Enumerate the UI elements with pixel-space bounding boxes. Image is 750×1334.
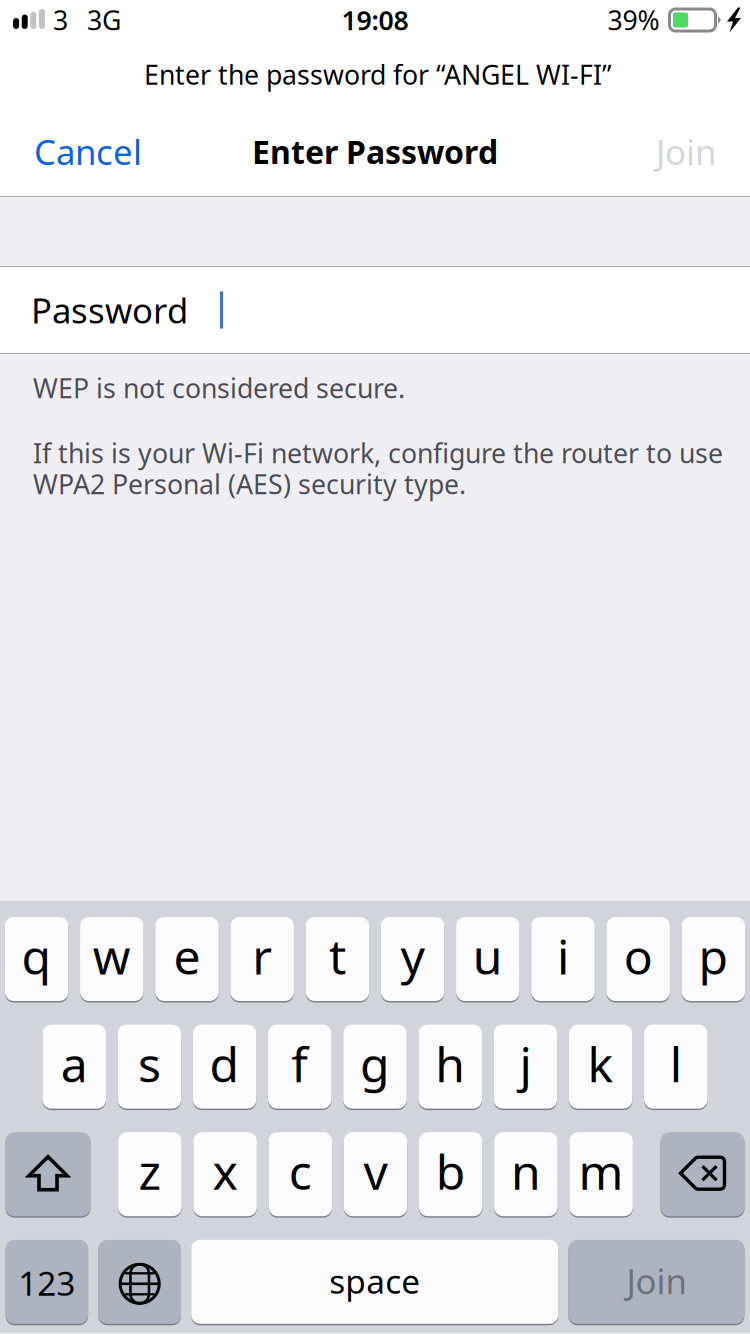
staticText: i — [557, 924, 569, 988]
staticText: e — [173, 924, 200, 988]
button[interactable]: a — [42, 1024, 106, 1110]
staticText: Join — [656, 128, 716, 174]
button[interactable]: o — [606, 916, 670, 1002]
staticText: v — [363, 1139, 387, 1203]
button[interactable]: 123 — [6, 1239, 88, 1325]
button[interactable]: w — [80, 916, 144, 1002]
staticText: b — [436, 1139, 466, 1203]
staticText: a — [61, 1032, 88, 1095]
staticText: r — [252, 924, 272, 988]
staticText: j — [519, 1032, 531, 1095]
button[interactable]: c — [268, 1131, 332, 1217]
button[interactable]: g — [343, 1024, 407, 1110]
button[interactable]: f — [268, 1024, 332, 1110]
staticText: d — [210, 1032, 240, 1095]
button[interactable]: s — [118, 1024, 181, 1110]
button[interactable]: h — [418, 1024, 482, 1110]
staticText: WEP is not considered secure. — [33, 370, 405, 406]
button[interactable]: Next keyboard — [98, 1239, 181, 1325]
staticText: 123 — [18, 1261, 75, 1305]
button[interactable]: Join — [638, 101, 734, 196]
button[interactable]: p — [682, 916, 745, 1002]
button[interactable]: v — [344, 1131, 407, 1217]
button[interactable]: q — [5, 916, 68, 1002]
staticText: t — [329, 924, 346, 988]
button[interactable]: Cancel — [16, 101, 160, 196]
button[interactable]: r — [230, 916, 294, 1002]
button[interactable]: d — [193, 1024, 256, 1110]
button[interactable]: space — [191, 1239, 558, 1325]
staticText: 39% — [607, 2, 659, 38]
staticText: q — [22, 924, 52, 988]
button[interactable]: n — [494, 1131, 558, 1217]
staticText: Cancel — [34, 128, 142, 174]
button[interactable]: Delete — [660, 1131, 744, 1217]
button[interactable]: Shift — [5, 1131, 90, 1217]
staticText: z — [138, 1139, 161, 1203]
button[interactable]: x — [193, 1131, 257, 1217]
button[interactable]: m — [569, 1131, 633, 1217]
button[interactable]: j — [494, 1024, 557, 1110]
staticText: Password — [31, 287, 188, 333]
staticText: 3G — [87, 2, 121, 38]
staticText: 19:08 — [341, 2, 408, 38]
staticText: Enter Password — [252, 130, 498, 173]
staticText: l — [670, 1032, 682, 1095]
button[interactable]: t — [306, 916, 369, 1002]
button[interactable]: e — [155, 916, 219, 1002]
staticText: c — [289, 1139, 312, 1203]
staticText: w — [93, 924, 131, 988]
staticText: p — [698, 924, 728, 988]
staticText: g — [360, 1032, 390, 1095]
staticText: f — [291, 1032, 308, 1095]
staticText: x — [213, 1139, 238, 1203]
staticText: h — [435, 1032, 465, 1095]
staticText: Enter the password for “ANGEL WI-FI” — [144, 57, 612, 92]
staticText: 3 — [53, 2, 68, 38]
staticText: Join — [626, 1258, 686, 1304]
button[interactable]: z — [118, 1131, 182, 1217]
staticText: k — [588, 1032, 614, 1095]
staticText: n — [511, 1139, 541, 1203]
staticText: y — [401, 924, 425, 988]
button[interactable]: u — [456, 916, 520, 1002]
button[interactable]: b — [419, 1131, 482, 1217]
button[interactable]: y — [381, 916, 444, 1002]
staticText: WPA2 Personal (AES) security type. — [33, 466, 466, 502]
button[interactable]: Join — [568, 1239, 744, 1325]
staticText: m — [579, 1139, 624, 1203]
button[interactable]: k — [569, 1024, 632, 1110]
staticText: s — [138, 1032, 161, 1095]
staticText: If this is your Wi-Fi network, configure… — [33, 435, 723, 471]
button[interactable]: i — [531, 916, 595, 1002]
button[interactable]: l — [644, 1024, 707, 1110]
staticText: u — [473, 924, 503, 988]
staticText: space — [329, 1259, 420, 1303]
staticText: o — [624, 924, 653, 988]
